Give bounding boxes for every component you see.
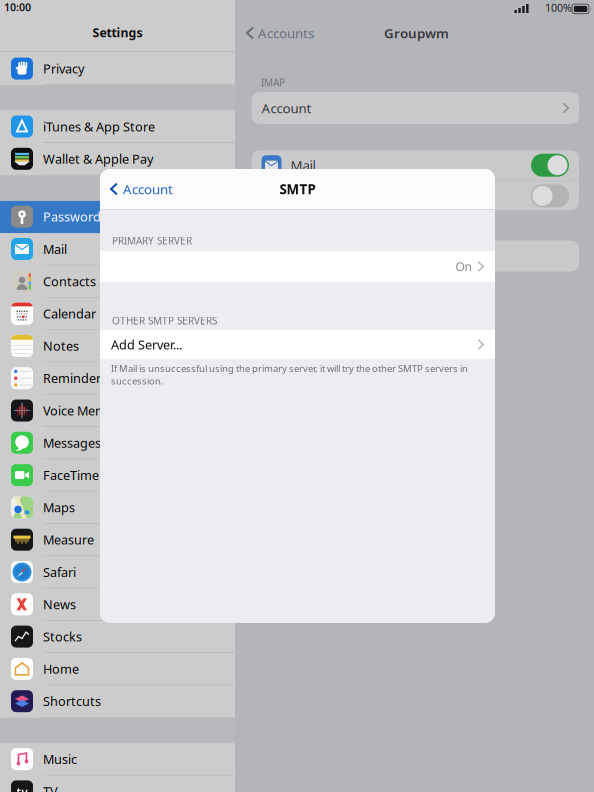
staticText: Contacts (43, 273, 96, 290)
staticText: Voice Memos (43, 402, 121, 419)
staticText: Account (123, 180, 173, 198)
staticText: Add Server... (111, 336, 182, 353)
staticText: 100% (545, 1, 572, 15)
button[interactable]: Wallet & Apple Pay (0, 143, 235, 175)
staticText: Messages (43, 434, 101, 451)
button[interactable]: Measure (0, 524, 235, 556)
button[interactable]: Privacy (0, 53, 235, 85)
button[interactable]: On (100, 251, 495, 282)
button[interactable]: Accounts (235, 19, 322, 47)
button[interactable]: Calendar (0, 298, 235, 330)
staticText: PRIMARY SERVER (112, 234, 192, 247)
button[interactable]: Account (251, 92, 579, 124)
staticText: Privacy (43, 60, 84, 77)
button[interactable]: iTunes & App Store (0, 111, 235, 143)
button[interactable]: Passwords & Accounts (0, 201, 235, 233)
staticText: Mail (43, 241, 67, 257)
staticText: Maps (43, 499, 75, 516)
staticText: 10:00 (4, 0, 31, 14)
button[interactable]: Messages (0, 427, 235, 459)
button[interactable]: Mail (0, 233, 235, 265)
staticText: Shortcuts (43, 693, 101, 710)
button[interactable]: Contacts (0, 265, 235, 298)
staticText: Account (261, 99, 311, 117)
staticText: Calendar (43, 305, 96, 322)
staticText: Passwords & Accounts (43, 208, 177, 225)
staticText: Safari (43, 564, 76, 580)
staticText: TV (43, 783, 58, 792)
staticText: If Mail is unsuccessful using the primar… (111, 362, 468, 387)
button[interactable]: News (0, 588, 235, 621)
button[interactable]: Safari (0, 556, 235, 588)
staticText: Settings (92, 24, 142, 41)
staticText: iTunes & App Store (43, 118, 155, 135)
staticText: tv (16, 784, 27, 792)
staticText: FaceTime (43, 467, 99, 483)
button[interactable]: Music (0, 743, 235, 776)
staticText: Mail (290, 156, 315, 174)
button[interactable]: Home (0, 653, 235, 685)
staticText: SMTP (279, 180, 315, 198)
button[interactable]: Shortcuts (0, 685, 235, 718)
button[interactable]: Stocks (0, 621, 235, 653)
staticText: Reminders (43, 370, 107, 387)
staticText: Measure (43, 531, 94, 548)
button[interactable]: FaceTime (0, 459, 235, 492)
staticText: OTHER SMTP SERVERS (112, 314, 217, 327)
staticText: Accounts (258, 24, 314, 42)
staticText: News (43, 596, 76, 613)
button[interactable]: Notes (0, 330, 235, 362)
staticText: Notes (43, 337, 79, 354)
staticText: Music (43, 751, 77, 767)
button[interactable]: Maps (0, 492, 235, 524)
button[interactable]: Account (100, 174, 181, 204)
button[interactable]: tv (0, 776, 235, 792)
button[interactable]: Reminders (0, 362, 235, 395)
staticText: Wallet & Apple Pay (43, 150, 153, 167)
staticText: Groupwm (384, 24, 449, 42)
staticText: On (455, 258, 471, 274)
staticText: Home (43, 660, 79, 677)
staticText: IMAP (261, 76, 285, 89)
button[interactable]: Add Server... (100, 330, 495, 359)
staticText: Stocks (43, 628, 82, 645)
button[interactable]: Voice Memos (0, 395, 235, 427)
